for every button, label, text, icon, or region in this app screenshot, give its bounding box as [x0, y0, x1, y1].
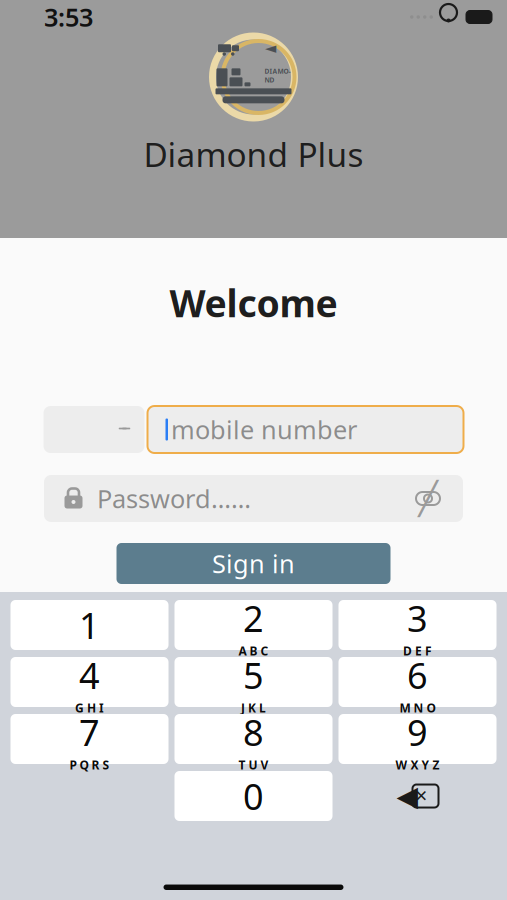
staticText: Welcome: [169, 278, 337, 328]
staticText: 2: [243, 594, 264, 642]
staticText: 3:53: [44, 0, 93, 34]
staticText: Sign in: [212, 547, 295, 580]
button[interactable]: 3: [338, 600, 496, 650]
staticText: A B C: [238, 643, 268, 659]
button[interactable]: 2: [174, 600, 332, 650]
staticText: P Q R S: [69, 757, 109, 773]
staticText: 0: [243, 772, 264, 820]
staticText: 9: [407, 708, 428, 756]
staticText: M N O: [399, 700, 435, 716]
button[interactable]: 0: [174, 771, 332, 821]
staticText: Diamond Plus: [143, 132, 363, 176]
staticText: ◄: [265, 40, 276, 56]
staticText: 5: [243, 651, 264, 699]
staticText: J K L: [241, 700, 266, 716]
button[interactable]: Password……: [44, 475, 463, 522]
staticText: T U V: [238, 757, 268, 773]
staticText: 7: [79, 708, 100, 756]
staticText: mobile number: [171, 413, 357, 446]
button[interactable]: 6: [338, 657, 496, 707]
button[interactable]: 5: [174, 657, 332, 707]
staticText: DIAMOND: [264, 67, 290, 84]
button[interactable]: 7: [10, 714, 168, 764]
button[interactable]: 4: [10, 657, 168, 707]
button[interactable]: Delete: [338, 771, 496, 821]
staticText: 3: [407, 594, 428, 642]
staticText: ╱: [418, 480, 437, 517]
staticText: 1: [79, 601, 100, 649]
staticText: Password……: [97, 482, 251, 515]
button[interactable]: 9: [338, 714, 496, 764]
staticText: G H I: [75, 700, 104, 716]
staticText: ✕: [414, 787, 427, 805]
button[interactable]: 1: [10, 600, 168, 650]
staticText: ◀: [396, 780, 418, 812]
staticText: 4: [79, 651, 100, 699]
button[interactable]: 8: [174, 714, 332, 764]
staticText: D E F: [403, 643, 432, 659]
button[interactable]: Sign in: [116, 543, 390, 584]
staticText: W X Y Z: [395, 757, 439, 773]
staticText: 8: [243, 708, 264, 756]
staticText: 6: [407, 651, 428, 699]
button[interactable]: mobile number: [147, 406, 463, 453]
button[interactable]: Select country code: [43, 406, 144, 453]
